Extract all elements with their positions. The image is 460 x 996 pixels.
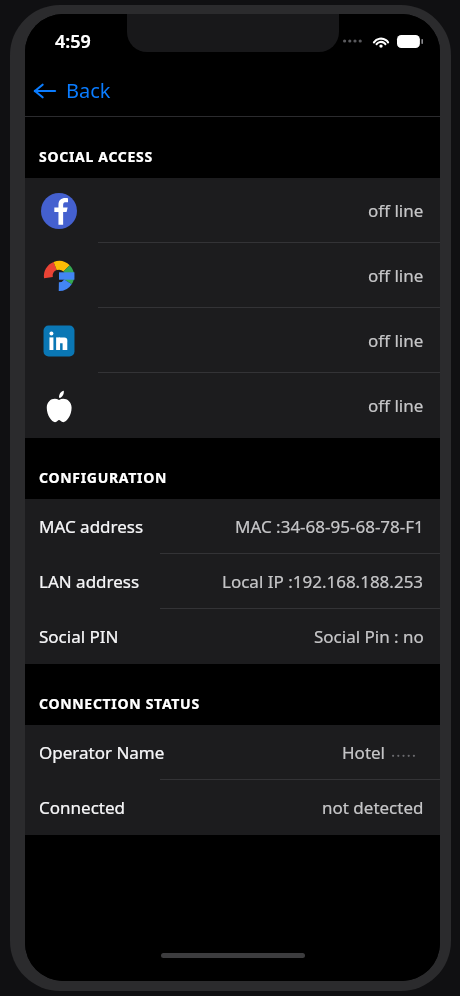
- staticText: LAN address: [39, 570, 140, 593]
- button[interactable]: LAN address: [25, 554, 440, 609]
- staticText: off line: [368, 199, 424, 222]
- staticText: Local IP :192.168.188.253: [222, 570, 424, 593]
- staticText: off line: [368, 264, 424, 287]
- staticText: Social Pin : no: [314, 625, 424, 648]
- button[interactable]: MAC address: [25, 499, 440, 554]
- staticText: MAC address: [39, 515, 144, 538]
- staticText: 4:59: [55, 29, 91, 54]
- button[interactable]: off line: [25, 308, 440, 373]
- staticText: Hotel: [342, 741, 385, 764]
- staticText: off line: [368, 394, 424, 417]
- button[interactable]: off line: [25, 178, 440, 243]
- button[interactable]: Social PIN: [25, 609, 440, 664]
- staticText: CONNECTION STATUS: [39, 694, 200, 713]
- staticText: MAC :34-68-95-68-78-F1: [235, 515, 424, 538]
- staticText: CONFIGURATION: [39, 468, 167, 487]
- staticText: Operator Name: [39, 741, 165, 764]
- staticText: not detected: [322, 796, 424, 819]
- button[interactable]: off line: [25, 373, 440, 438]
- button[interactable]: Connected: [25, 780, 440, 835]
- staticText: SOCIAL ACCESS: [39, 147, 153, 166]
- button[interactable]: Back: [25, 64, 440, 116]
- staticText: Back: [66, 77, 111, 104]
- button[interactable]: Operator Name: [25, 725, 440, 780]
- staticText: off line: [368, 329, 424, 352]
- staticText: Social PIN: [39, 625, 119, 648]
- button[interactable]: off line: [25, 243, 440, 308]
- staticText: Connected: [39, 796, 125, 819]
